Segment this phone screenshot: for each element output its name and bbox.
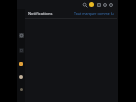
button[interactable]: Server Amber — [19, 62, 23, 66]
button[interactable]: Home — [19, 33, 24, 38]
button[interactable]: Account — [89, 2, 94, 7]
button[interactable]: Extensions — [96, 2, 102, 8]
button[interactable]: Search — [82, 2, 88, 8]
staticText: Tout marquer comme lu — [74, 11, 114, 16]
button[interactable]: Server Beige — [19, 75, 23, 79]
button[interactable]: Messages — [19, 48, 24, 53]
button[interactable]: Server Grey — [20, 88, 23, 91]
button[interactable]: Tout marquer comme lu — [74, 11, 114, 16]
button[interactable]: Profile — [108, 2, 114, 8]
button[interactable]: Downloads — [102, 2, 108, 8]
staticText: Notifications — [28, 11, 53, 16]
